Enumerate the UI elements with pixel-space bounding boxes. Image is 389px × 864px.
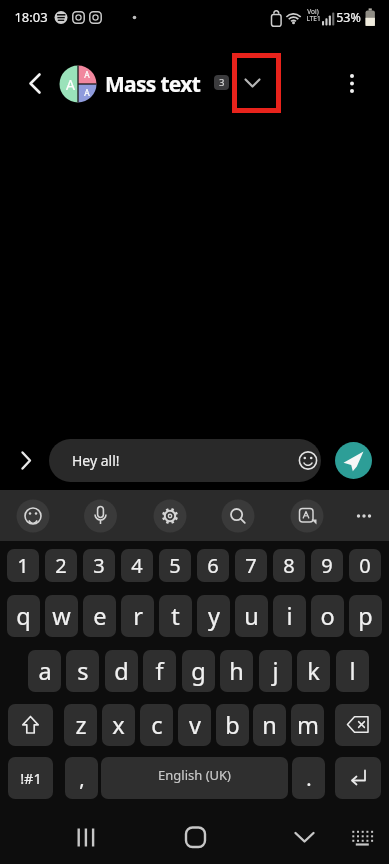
button[interactable] <box>66 818 110 862</box>
button[interactable]: 8 <box>273 549 305 582</box>
staticText: LTE1 <box>306 14 321 23</box>
staticText: k <box>307 655 320 687</box>
staticText: Hey all! <box>72 451 120 470</box>
staticText: 8 <box>283 552 295 579</box>
staticText: j <box>272 655 279 687</box>
button[interactable]: c <box>140 704 173 746</box>
button[interactable]: l <box>336 650 369 692</box>
button[interactable] <box>101 757 288 799</box>
staticText: l <box>349 655 356 687</box>
button[interactable]: n <box>253 704 286 746</box>
button[interactable] <box>343 818 387 862</box>
staticText: i <box>286 600 293 632</box>
button[interactable]: 3 <box>83 549 115 582</box>
button[interactable] <box>14 497 52 535</box>
button[interactable]: 4 <box>121 549 153 582</box>
button[interactable]: z <box>64 704 97 746</box>
button[interactable]: i <box>273 595 306 637</box>
button[interactable] <box>335 704 381 746</box>
button[interactable] <box>288 497 326 535</box>
button[interactable]: e <box>83 595 116 637</box>
staticText: A <box>84 69 90 81</box>
button[interactable]: t <box>159 595 192 637</box>
button[interactable]: x <box>102 704 135 746</box>
staticText: r <box>133 600 143 632</box>
button[interactable]: s <box>66 650 99 692</box>
button[interactable]: f <box>143 650 176 692</box>
button[interactable]: q <box>7 595 40 637</box>
button[interactable]: h <box>220 650 253 692</box>
staticText: d <box>114 655 129 687</box>
staticText: e <box>93 600 107 632</box>
button[interactable] <box>12 444 42 478</box>
staticText: c <box>151 709 163 741</box>
button[interactable]: 2 <box>45 549 77 582</box>
staticText: 0 <box>359 552 371 579</box>
staticText: n <box>262 709 277 741</box>
button[interactable]: j <box>259 650 292 692</box>
staticText: h <box>229 655 244 687</box>
button[interactable] <box>151 497 189 535</box>
staticText: v <box>189 709 201 741</box>
staticText: g <box>191 655 206 687</box>
button[interactable] <box>219 497 257 535</box>
button[interactable]: 1 <box>7 549 39 582</box>
button[interactable]: r <box>121 595 154 637</box>
staticText: w <box>52 600 71 632</box>
button[interactable]: v <box>178 704 211 746</box>
staticText: a <box>38 655 52 687</box>
button[interactable] <box>335 757 381 799</box>
staticText: 6 <box>207 552 219 579</box>
staticText: z <box>75 709 87 741</box>
staticText: 3 <box>219 76 225 89</box>
staticText: o <box>320 600 335 632</box>
staticText: 5 <box>169 552 181 579</box>
button[interactable]: m <box>291 704 324 746</box>
button[interactable]: Hey all! <box>49 439 321 482</box>
button[interactable] <box>345 497 383 535</box>
button[interactable]: . <box>292 757 325 799</box>
button[interactable] <box>282 818 326 862</box>
button[interactable]: g <box>182 650 215 692</box>
button[interactable]: u <box>235 595 268 637</box>
button[interactable] <box>8 704 53 746</box>
button[interactable]: 7 <box>235 549 267 582</box>
button[interactable]: o <box>311 595 344 637</box>
button[interactable]: p <box>349 595 382 637</box>
button[interactable]: y <box>197 595 230 637</box>
button[interactable] <box>16 60 56 106</box>
staticText: 53% <box>336 9 361 26</box>
staticText: , <box>79 765 85 792</box>
button[interactable]: , <box>65 757 98 799</box>
staticText: m <box>297 709 319 741</box>
button[interactable] <box>173 818 217 862</box>
button[interactable] <box>335 442 372 479</box>
staticText: f <box>155 655 164 687</box>
staticText: . <box>306 765 312 792</box>
staticText: y <box>208 600 220 632</box>
staticText: t <box>171 600 180 632</box>
button[interactable] <box>82 497 120 535</box>
button[interactable] <box>334 62 370 106</box>
staticText: 18:03 <box>14 8 48 26</box>
button[interactable]: w <box>45 595 78 637</box>
staticText: u <box>244 600 259 632</box>
button[interactable]: d <box>105 650 138 692</box>
staticText: b <box>225 709 240 741</box>
staticText: 7 <box>245 552 257 579</box>
staticText: s <box>77 655 89 687</box>
button[interactable] <box>56 62 100 106</box>
staticText: 1 <box>17 552 29 579</box>
button[interactable]: !#1 <box>8 757 53 799</box>
staticText: A <box>84 87 90 99</box>
staticText: 3 <box>93 552 105 579</box>
button[interactable]: 0 <box>349 549 381 582</box>
button[interactable]: 5 <box>159 549 191 582</box>
button[interactable]: k <box>297 650 330 692</box>
button[interactable]: 9 <box>311 549 343 582</box>
staticText: 2 <box>55 552 67 579</box>
button[interactable]: b <box>216 704 249 746</box>
button[interactable] <box>236 62 270 104</box>
button[interactable]: 6 <box>197 549 229 582</box>
button[interactable]: a <box>28 650 61 692</box>
